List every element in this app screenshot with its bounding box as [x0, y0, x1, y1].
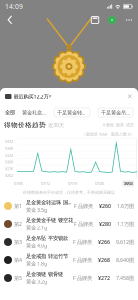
staticText: F 品牌类 [74, 220, 93, 227]
staticText: 足金戒指 转运竹节 [26, 253, 68, 259]
staticText: 第5 [14, 274, 22, 282]
staticText: 07/19 [68, 181, 77, 186]
button[interactable]: 千足黄金转运珠… [54, 108, 90, 117]
staticText: 黄金 2.1g [26, 224, 47, 231]
staticText: ¥268 [98, 256, 110, 264]
staticText: 足金项链 锁骨链 [26, 271, 63, 277]
staticText: F 品牌类 [74, 202, 93, 209]
staticText: 第1 [14, 202, 22, 210]
staticText: 07/12 [41, 181, 50, 186]
staticText: 足金吊坠 平安锁款 [26, 235, 68, 241]
staticText: 千足黄金转运珠… [57, 109, 87, 116]
staticText: 1.1万图 [117, 220, 134, 228]
button[interactable]: 第5 [0, 269, 138, 287]
staticText: 07/26 [95, 181, 104, 186]
staticText: 1.6万图 [117, 202, 134, 210]
button[interactable]: 第4 [0, 251, 138, 269]
button[interactable]: 第2 [0, 215, 138, 233]
staticText: 第4 [14, 256, 22, 264]
staticText: 7,458图 [116, 274, 134, 282]
staticText: 07/05 [14, 181, 23, 186]
staticText: ¥272 [98, 274, 110, 282]
staticText: 黄金 4.0g [26, 242, 47, 249]
staticText: 足金黄金手链 镂空花 [26, 217, 73, 223]
staticText: 全部 [5, 109, 15, 116]
button[interactable]: 第3 [0, 233, 138, 251]
staticText: ¥348 [5, 146, 13, 151]
staticText: ¥276 [5, 166, 13, 171]
button[interactable]: 千足黄金吊… [98, 108, 133, 117]
staticText: 最近购买12.2万+ [13, 93, 51, 100]
staticText: 第3 [14, 238, 22, 246]
staticText: 得物价格趋势 [4, 121, 46, 129]
staticText: 第2 [14, 220, 22, 228]
staticText: 14:09 [5, 2, 23, 11]
button[interactable]: 全部 [5, 106, 15, 118]
staticText: ¥280 [99, 220, 111, 228]
staticText: ￥最低 最高 成交 [102, 122, 134, 127]
staticText: F 品牌类 [73, 256, 92, 263]
staticText: 黄金礼盒… [22, 109, 46, 116]
staticText: 黄金 1.8g [26, 260, 47, 267]
staticText: F 品牌类 [73, 238, 92, 245]
staticText: ¥324 [5, 152, 13, 158]
staticText: 黄金 3.5g [26, 206, 47, 213]
staticText: ¥300 [5, 159, 13, 164]
staticText: F 品牌类 [73, 274, 92, 281]
button[interactable]: Store [90, 15, 100, 25]
button[interactable]: 最近购买12.2万+ [0, 88, 138, 105]
staticText: ¥252 [5, 173, 13, 178]
staticText: 08/04 [123, 181, 132, 186]
staticText: 黄金 3.2g [26, 278, 47, 285]
staticText: 足金黄金转运珠 国潮风 [26, 199, 73, 206]
staticText: 近30天 [48, 121, 64, 129]
button[interactable]: More [124, 15, 134, 25]
staticText: 8,640图 [116, 256, 134, 264]
staticText: 价格数据来自平台成交，仅供参考，不构成购买建议 [23, 190, 115, 195]
staticText: ¥260 [99, 202, 111, 210]
staticText: ✕ [127, 93, 133, 100]
staticText: 9,612图 [116, 238, 134, 246]
button[interactable]: Share to WeChat [107, 15, 117, 25]
button[interactable]: Back [4, 14, 16, 26]
staticText: （最低价 ¥268 最高人数 8） [82, 131, 134, 137]
staticText: 千足黄金吊… [101, 109, 130, 116]
staticText: ¥372 [5, 139, 13, 144]
button[interactable]: 黄金礼盒… [22, 106, 46, 118]
staticText: ¥266 [98, 238, 110, 246]
button[interactable]: 第1 [0, 197, 138, 215]
